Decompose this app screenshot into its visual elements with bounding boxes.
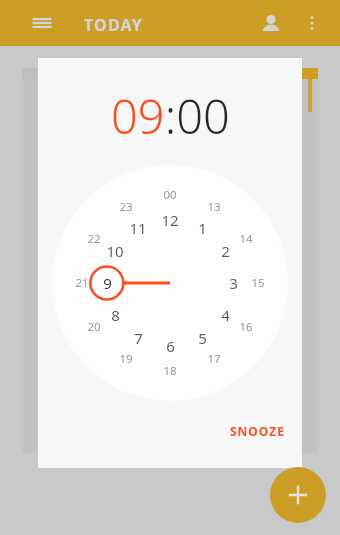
staticText: 2 — [221, 241, 230, 261]
staticText: 11 — [129, 218, 147, 238]
staticText: 19 — [119, 351, 133, 367]
staticText: 13 — [207, 199, 221, 215]
staticText: 20 — [87, 319, 101, 335]
button[interactable]: 09:00 — [38, 84, 302, 144]
staticText: 14 — [239, 231, 253, 247]
staticText: 23 — [119, 199, 133, 215]
staticText: 00 — [163, 187, 177, 203]
staticText: 7 — [134, 328, 143, 348]
staticText: 3 — [229, 273, 238, 293]
staticText: 21 — [75, 275, 89, 291]
button[interactable]: More options — [300, 11, 324, 35]
button[interactable]: SNOOZE — [222, 416, 292, 446]
button[interactable]: Open navigation menu — [30, 11, 54, 35]
staticText: 17 — [207, 351, 221, 367]
staticText: 12 — [161, 210, 179, 230]
button[interactable]: Account — [259, 11, 283, 35]
staticText: TODAY — [84, 14, 144, 36]
staticText: 6 — [166, 336, 175, 356]
staticText: 18 — [163, 363, 177, 379]
button[interactable]: Clock hour picker, 9 selected — [52, 165, 288, 401]
staticText: 1 — [198, 218, 207, 238]
staticText: 9 — [103, 273, 112, 293]
staticText: 09:00 — [111, 84, 230, 144]
staticText: 5 — [198, 328, 207, 348]
staticText: 16 — [239, 319, 253, 335]
staticText: 10 — [106, 241, 124, 261]
button[interactable]: Add alarm — [270, 467, 326, 523]
staticText: 4 — [221, 305, 230, 325]
staticText: 22 — [87, 231, 101, 247]
staticText: SNOOZE — [230, 423, 285, 439]
staticText: 15 — [251, 275, 265, 291]
staticText: 8 — [111, 305, 120, 325]
